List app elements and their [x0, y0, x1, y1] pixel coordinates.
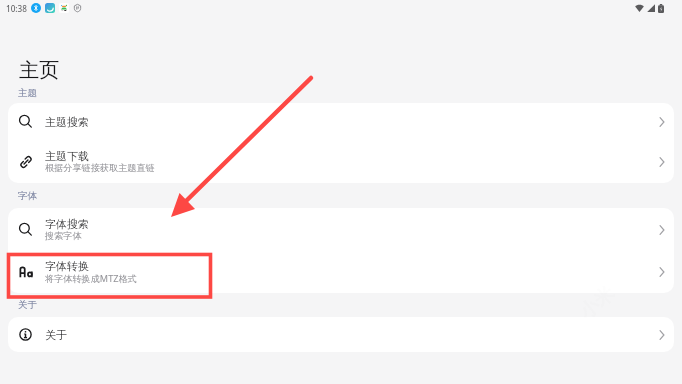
staticText: 小米: [575, 282, 619, 324]
staticText: 字体: [18, 190, 37, 202]
button[interactable]: 主题搜索: [8, 103, 674, 140]
staticText: 关于: [18, 299, 37, 311]
other: Mobile signal: [647, 4, 655, 12]
staticText: 主页: [19, 58, 60, 83]
button[interactable]: 主题下载: [8, 140, 674, 183]
staticText: 根据分享链接获取主题直链: [45, 162, 155, 174]
staticText: 主题下载: [45, 149, 89, 163]
staticText: 关于: [45, 328, 67, 342]
staticText: 主题搜索: [45, 115, 89, 129]
other: Bluetooth: [31, 3, 41, 13]
staticText: 字体搜索: [45, 217, 89, 231]
staticText: 主题: [18, 87, 37, 99]
staticText: 字体转换: [45, 259, 89, 273]
other: Security: [74, 4, 81, 12]
staticText: 10:38: [6, 3, 27, 14]
other: Battery: [658, 4, 664, 13]
button[interactable]: 关于: [8, 317, 674, 352]
other: Wi-Fi: [635, 4, 644, 12]
button[interactable]: 字体转换: [8, 251, 674, 293]
button[interactable]: 字体搜索: [8, 208, 674, 251]
staticText: 搜索字体: [45, 230, 82, 242]
staticText: 将字体转换成MTZ格式: [45, 272, 137, 284]
